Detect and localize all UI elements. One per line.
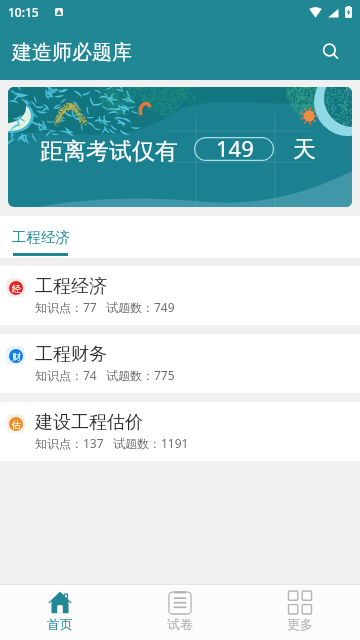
staticText: 建造师必题库 <box>12 40 132 65</box>
staticText: 知识点：74 <box>35 367 97 383</box>
staticText: 工程财务 <box>35 343 107 366</box>
staticText: 财 <box>12 351 21 362</box>
button[interactable]: 财 <box>0 334 360 393</box>
staticText: 知识点：77 <box>35 299 97 315</box>
staticText: 试题数：775 <box>106 367 175 383</box>
staticText: 估 <box>12 419 21 430</box>
staticText: 距离考试仅有 <box>40 137 178 166</box>
staticText: 经 <box>12 283 21 294</box>
staticText: 更多 <box>287 616 313 632</box>
button[interactable]: 估 <box>0 402 360 461</box>
button[interactable]: Search <box>315 36 347 68</box>
staticText: 知识点：137 <box>35 435 104 451</box>
staticText: 10:15 <box>8 4 39 20</box>
staticText: 天 <box>293 135 316 164</box>
button[interactable]: 距离考试仅有 <box>8 87 352 207</box>
staticText: 工程经济 <box>35 275 107 298</box>
button[interactable]: 首页 <box>0 585 120 640</box>
staticText: 149 <box>216 133 254 157</box>
staticText: 建设工程估价 <box>35 411 143 434</box>
staticText: 首页 <box>47 616 73 632</box>
staticText: 工程经济 <box>12 228 70 246</box>
button[interactable]: 更多 <box>240 585 360 640</box>
staticText: 试题数：749 <box>106 299 175 315</box>
button[interactable]: 工程经济 <box>8 216 73 258</box>
staticText: 试题数：1191 <box>113 435 189 451</box>
staticText: 试卷 <box>167 616 193 632</box>
button[interactable]: 经 <box>0 266 360 325</box>
button[interactable]: 试卷 <box>120 585 240 640</box>
